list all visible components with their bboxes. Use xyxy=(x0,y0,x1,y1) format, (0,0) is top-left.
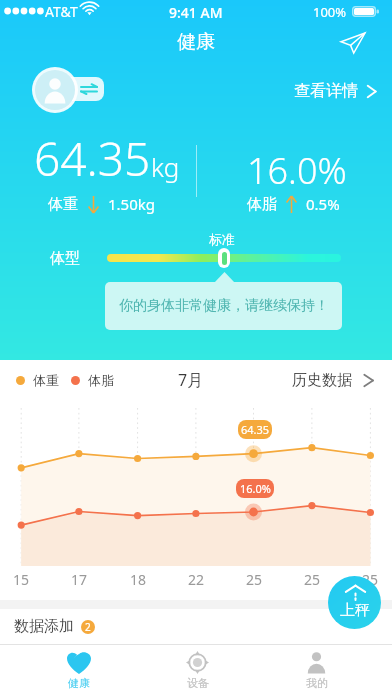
button[interactable]: 我的 xyxy=(257,645,376,696)
button[interactable]: 历史数据 xyxy=(292,371,376,390)
staticText: 100% xyxy=(313,3,347,21)
staticText: 7月 xyxy=(178,369,204,391)
button[interactable]: 设备 xyxy=(138,645,257,696)
staticText: 15 xyxy=(13,570,30,589)
staticText: 设备 xyxy=(187,676,209,690)
staticText: 体重 xyxy=(33,372,59,388)
staticText: AT&T xyxy=(45,2,78,21)
staticText: 25 xyxy=(246,570,263,589)
staticText: kg xyxy=(151,149,180,184)
staticText: 体脂 xyxy=(247,195,277,214)
staticText: 健康 xyxy=(68,676,90,690)
staticText: 你的身体非常健康，请继续保持！ xyxy=(119,297,329,315)
staticText: 我的 xyxy=(306,676,328,690)
staticText: 0.5% xyxy=(306,194,340,214)
staticText: 上秤 xyxy=(340,601,370,620)
staticText: 64.35 xyxy=(241,422,270,437)
staticText: 标准 xyxy=(209,231,235,247)
staticText: 16.0% xyxy=(240,481,271,496)
staticText: 25 xyxy=(362,570,379,589)
staticText: 22 xyxy=(188,570,205,589)
staticText: 查看详情 xyxy=(294,81,358,101)
button[interactable]: 健康 xyxy=(19,645,138,696)
staticText: 体脂 xyxy=(88,372,114,388)
staticText: 18 xyxy=(130,570,147,589)
staticText: 健康 xyxy=(177,30,215,54)
staticText: 64.35 xyxy=(34,127,151,190)
staticText: 体重 xyxy=(48,195,78,214)
staticText: 体型 xyxy=(50,249,80,268)
staticText: 25 xyxy=(304,570,321,589)
staticText: 历史数据 xyxy=(292,371,352,390)
staticText: 9:41 AM xyxy=(169,3,223,22)
button[interactable]: 用户头像 xyxy=(32,67,78,113)
button[interactable]: 分享 xyxy=(338,28,368,58)
staticText: 2 xyxy=(85,620,91,634)
staticText: 17 xyxy=(71,570,88,589)
staticText: 16.0% xyxy=(247,146,347,195)
button[interactable]: 切换用户 xyxy=(58,77,104,101)
button[interactable]: 查看详情 xyxy=(294,79,379,103)
staticText: 数据添加 xyxy=(14,617,74,636)
staticText: 1.50kg xyxy=(108,194,155,214)
button[interactable]: 数据添加 xyxy=(0,609,392,644)
button[interactable]: 上秤 xyxy=(328,576,381,629)
